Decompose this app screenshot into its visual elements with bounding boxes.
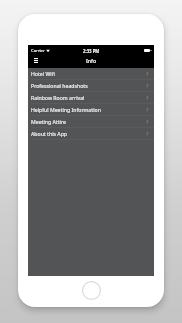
staticText: Meeting Attire bbox=[31, 118, 66, 125]
button[interactable]: Professional headshots bbox=[28, 80, 154, 92]
button[interactable]: About this App bbox=[28, 128, 154, 140]
staticText: Professional headshots bbox=[31, 82, 88, 89]
staticText: Info bbox=[86, 57, 97, 64]
staticText: Hotel Wifi bbox=[31, 70, 55, 77]
button[interactable]: Menu bbox=[30, 57, 41, 68]
staticText: 2:33 PM bbox=[83, 48, 100, 54]
staticText: Rainbow Room arrival bbox=[31, 94, 85, 101]
staticText: Carrier bbox=[31, 48, 45, 54]
button[interactable]: Helpful Meeting Information bbox=[28, 104, 154, 116]
staticText: About this App bbox=[31, 130, 68, 137]
staticText: Helpful Meeting Information bbox=[31, 106, 101, 113]
button[interactable]: Meeting Attire bbox=[28, 116, 154, 128]
button[interactable]: Hotel Wifi bbox=[28, 68, 154, 80]
button[interactable]: Rainbow Room arrival bbox=[28, 92, 154, 104]
